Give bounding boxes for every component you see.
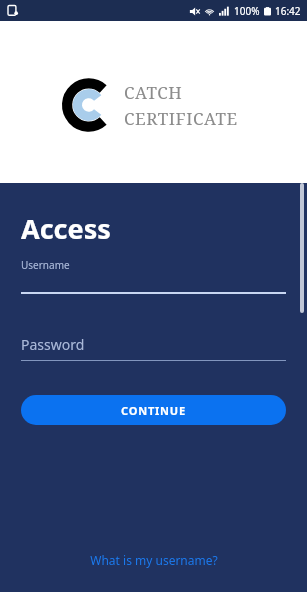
staticText: What is my username? [90, 552, 218, 568]
staticText: 16:42 [275, 4, 301, 18]
staticText: Username [21, 258, 70, 272]
staticText: Access [21, 210, 111, 247]
button[interactable]: What is my username? [21, 552, 286, 568]
button[interactable]: Username [21, 258, 286, 294]
staticText: CERTIFICATE [124, 107, 238, 130]
staticText: Password [21, 335, 85, 354]
button[interactable]: Password [21, 335, 286, 361]
button[interactable]: CONTINUE [21, 395, 286, 425]
staticText: 100% [234, 4, 260, 18]
staticText: CONTINUE [121, 403, 186, 418]
staticText: CATCH [124, 81, 183, 104]
